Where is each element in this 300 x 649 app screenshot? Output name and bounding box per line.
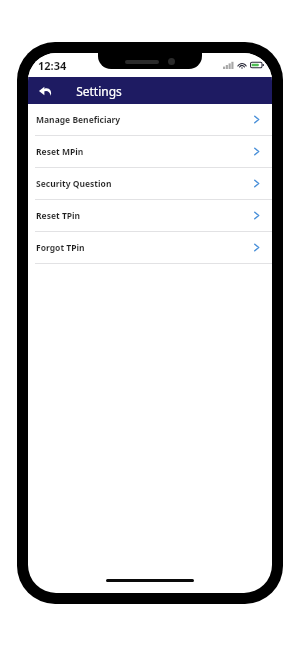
- button[interactable]: Security Question: [28, 168, 272, 199]
- staticText: Forgot TPin: [36, 242, 251, 254]
- staticText: Manage Beneficiary: [36, 114, 251, 126]
- staticText: 12:34: [38, 58, 67, 73]
- button[interactable]: Reset TPin: [28, 200, 272, 231]
- button[interactable]: Forgot TPin: [28, 232, 272, 263]
- button[interactable]: Reset MPin: [28, 136, 272, 167]
- button[interactable]: Back: [34, 79, 58, 103]
- button[interactable]: Manage Beneficiary: [28, 104, 272, 135]
- staticText: Reset MPin: [36, 146, 251, 158]
- staticText: Reset TPin: [36, 210, 251, 222]
- staticText: Settings: [76, 83, 122, 99]
- staticText: Security Question: [36, 178, 251, 190]
